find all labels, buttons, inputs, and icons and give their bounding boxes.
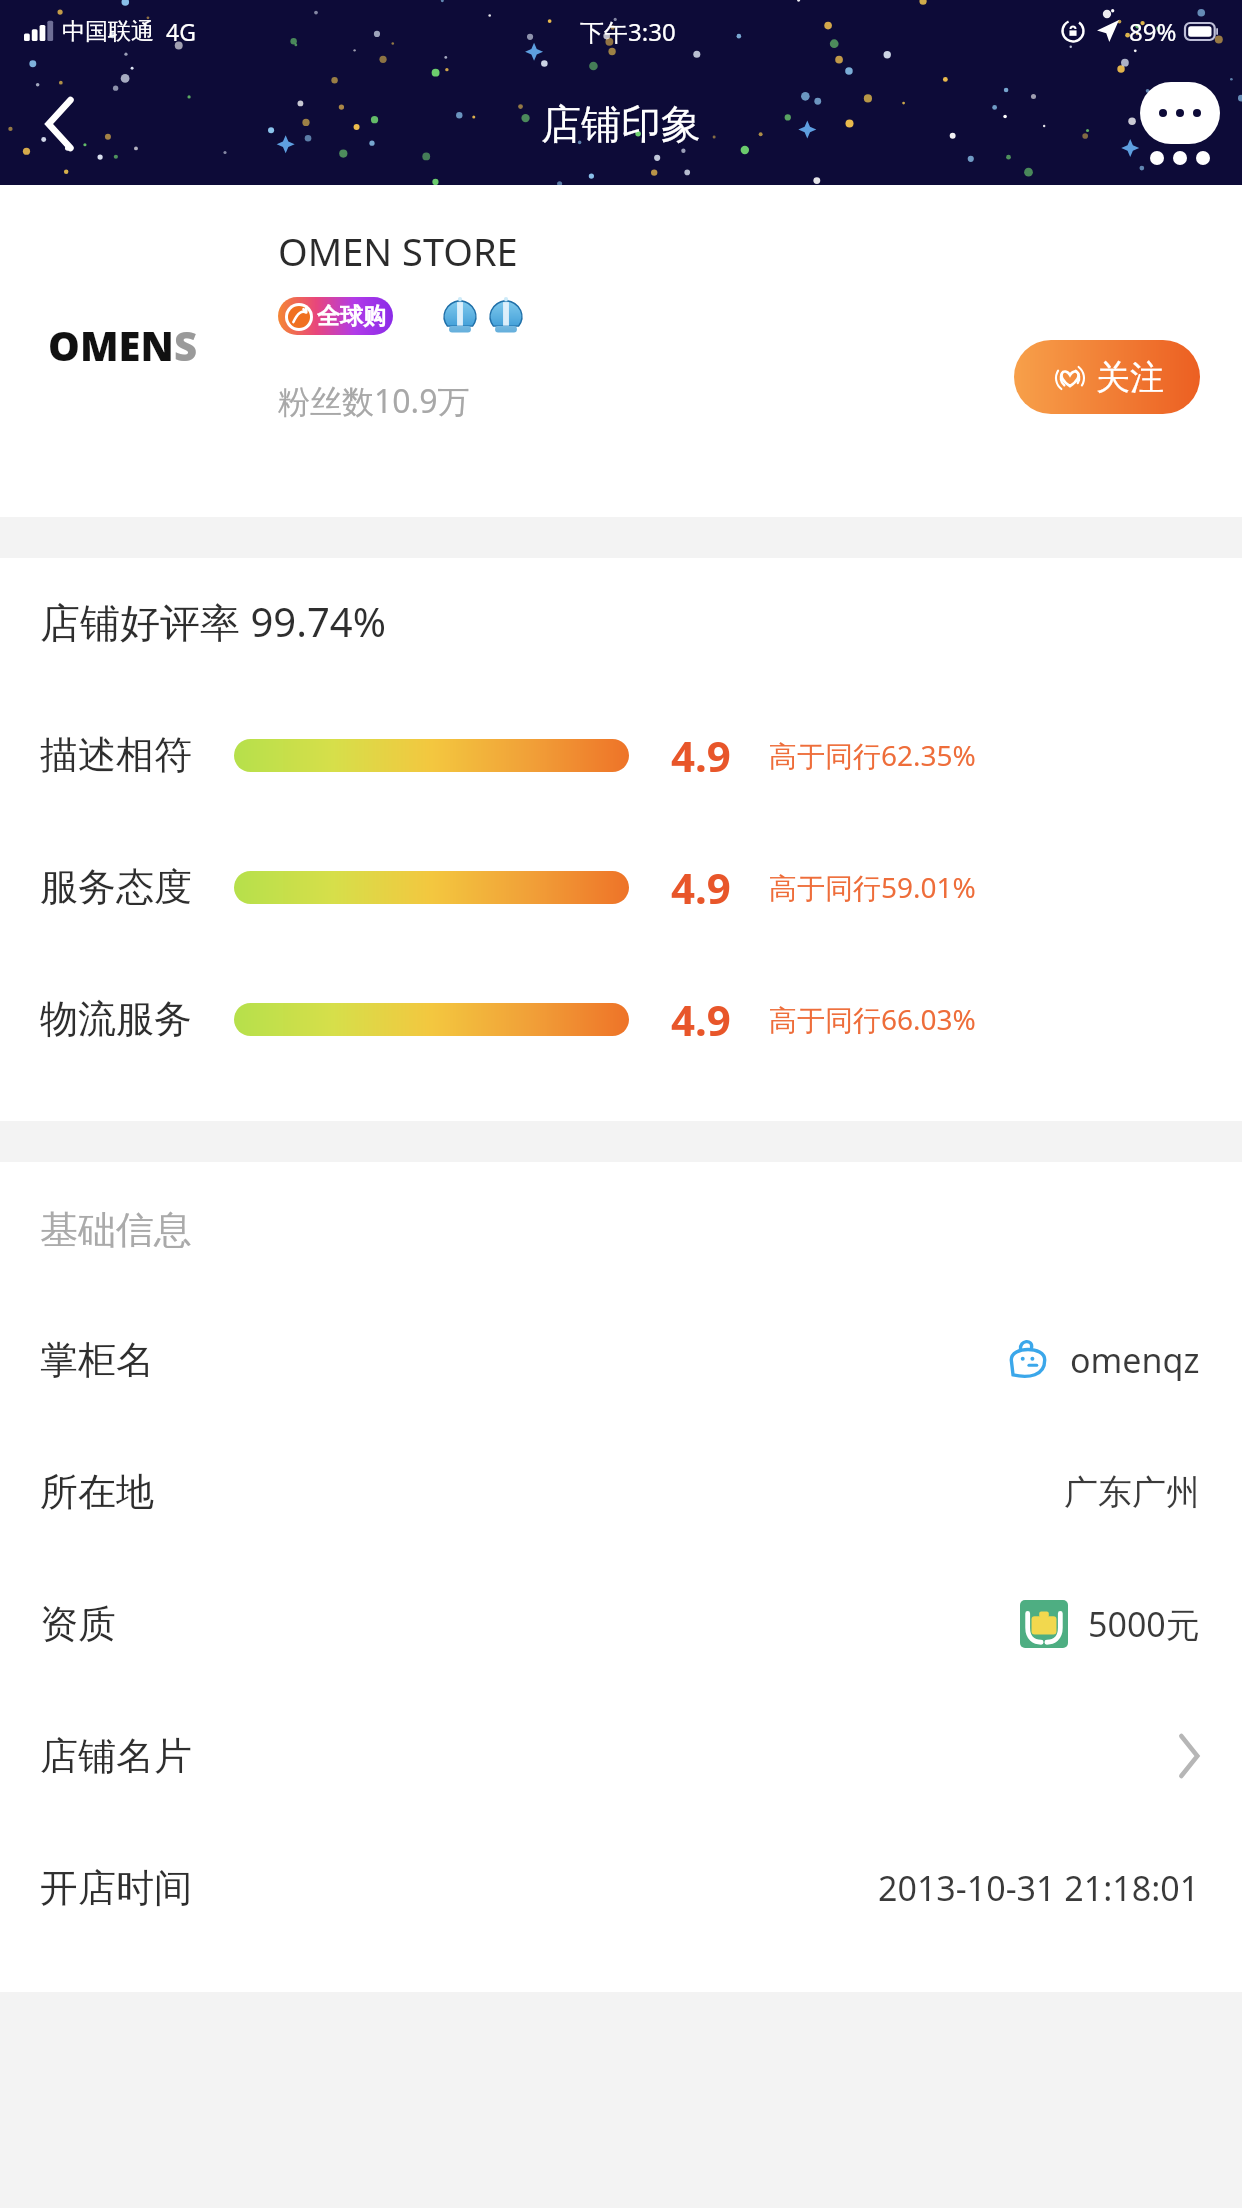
staticText: 4.9	[671, 727, 731, 784]
staticText: 广东广州	[1064, 1471, 1200, 1514]
staticText: omenqz	[1070, 1337, 1200, 1383]
staticText: 4.9	[671, 859, 731, 916]
staticText: 店铺名片	[40, 1732, 192, 1780]
button[interactable]: More options	[1140, 82, 1220, 165]
staticText: 描述相符	[40, 731, 192, 779]
staticText: 基础信息	[40, 1206, 192, 1254]
button[interactable]: 关注	[1014, 340, 1200, 414]
staticText: 开店时间	[40, 1864, 192, 1912]
staticText: 店铺好评率 99.74%	[40, 594, 386, 649]
staticText: 4.9	[671, 991, 731, 1048]
staticText: 高于同行62.35%	[769, 736, 976, 774]
staticText: OMEN	[48, 318, 174, 372]
staticText: S	[174, 318, 198, 372]
staticText: 服务态度	[40, 863, 192, 911]
staticText: 4G	[166, 16, 196, 47]
staticText: 全球购	[317, 302, 386, 331]
staticText: 资质	[40, 1600, 116, 1648]
staticText: 高于同行66.03%	[769, 1000, 976, 1038]
staticText: 物流服务	[40, 995, 192, 1043]
button[interactable]: Back	[24, 88, 96, 160]
staticText: 2013-10-31 21:18:01	[878, 1865, 1200, 1911]
staticText: 所在地	[40, 1468, 154, 1516]
button[interactable]: 店铺名片	[0, 1690, 1242, 1822]
staticText: 高于同行59.01%	[769, 868, 976, 906]
staticText: 中国联通	[62, 17, 154, 46]
staticText: 关注	[1096, 356, 1164, 399]
staticText: 掌柜名	[40, 1336, 154, 1384]
staticText: OMEN STORE	[278, 225, 518, 277]
staticText: 89%	[1129, 15, 1177, 48]
staticText: 下午3:30	[580, 15, 676, 48]
staticText: 5000元	[1088, 1601, 1200, 1647]
staticText: 粉丝数10.9万	[278, 379, 470, 423]
staticText: 店铺印象	[541, 99, 701, 149]
